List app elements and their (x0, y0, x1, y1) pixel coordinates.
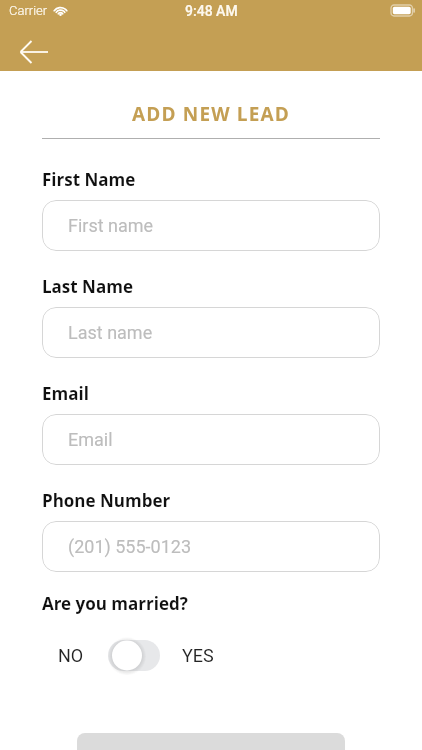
button[interactable]: First name (42, 200, 380, 251)
staticText: Last name (68, 322, 153, 343)
staticText: YES (182, 645, 214, 666)
staticText: First Name (42, 168, 136, 191)
button[interactable]: Back (8, 38, 60, 66)
staticText: (201) 555-0123 (68, 536, 192, 557)
button[interactable]: Last name (42, 307, 380, 358)
staticText: Carrier (9, 3, 48, 18)
staticText: NO (58, 645, 84, 666)
button[interactable]: Married toggle (108, 640, 160, 671)
staticText: Are you married? (42, 592, 188, 615)
staticText: ADD NEW LEAD (0, 101, 422, 127)
staticText: Last Name (42, 275, 133, 298)
staticText: 9:48 AM (185, 3, 238, 19)
button[interactable]: (201) 555-0123 (42, 521, 380, 572)
staticText: Email (68, 429, 113, 450)
button[interactable]: Email (42, 414, 380, 465)
staticText: Phone Number (42, 489, 171, 512)
staticText: First name (68, 215, 154, 236)
staticText: Email (42, 382, 89, 405)
